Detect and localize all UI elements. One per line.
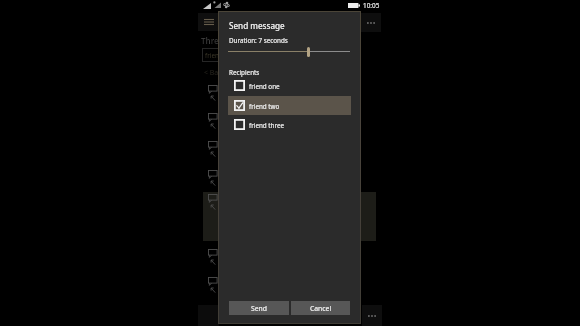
staticText: friend one bbox=[249, 82, 280, 91]
staticText: Cancel bbox=[310, 304, 332, 313]
staticText: friend bbox=[205, 51, 223, 60]
staticText: Recipients bbox=[229, 68, 260, 77]
button[interactable] bbox=[203, 83, 376, 109]
staticText: 10:05 bbox=[363, 1, 380, 10]
button[interactable] bbox=[203, 192, 376, 218]
button[interactable]: Menu bbox=[198, 13, 218, 31]
staticText: Send bbox=[251, 304, 267, 313]
button[interactable]: More options bbox=[361, 13, 381, 32]
button[interactable] bbox=[203, 247, 376, 273]
staticText: Send message bbox=[229, 20, 285, 31]
staticText: Duration: 7 seconds bbox=[229, 36, 288, 45]
staticText: friend three bbox=[249, 121, 285, 130]
button[interactable]: friend bbox=[202, 48, 262, 62]
button[interactable] bbox=[203, 111, 376, 137]
button[interactable] bbox=[228, 76, 351, 95]
button[interactable]: < Back bbox=[204, 68, 226, 78]
button[interactable] bbox=[203, 275, 376, 301]
button[interactable] bbox=[228, 96, 351, 115]
button[interactable]: Duration slider bbox=[226, 45, 352, 58]
button[interactable]: Send bbox=[229, 301, 289, 315]
button[interactable] bbox=[228, 96, 351, 115]
button[interactable] bbox=[203, 139, 376, 165]
button[interactable] bbox=[228, 115, 351, 134]
button[interactable] bbox=[203, 168, 376, 194]
button[interactable]: More bbox=[198, 305, 219, 326]
staticText: Thread bbox=[201, 35, 229, 46]
button[interactable] bbox=[203, 192, 376, 241]
button[interactable]: Cancel bbox=[291, 301, 350, 315]
staticText: friend two bbox=[249, 102, 280, 111]
button[interactable]: More bbox=[362, 305, 382, 326]
